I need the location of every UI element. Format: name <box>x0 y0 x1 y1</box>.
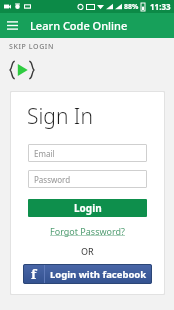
button[interactable]: Open navigation menu <box>0 13 25 38</box>
staticText: Sign In <box>27 102 93 131</box>
staticText: Login with facebook <box>50 268 147 281</box>
button[interactable]: Forgot Password? <box>50 225 125 237</box>
staticText: OR <box>81 245 94 257</box>
staticText: Password <box>34 174 71 185</box>
staticText: Email <box>34 148 55 159</box>
staticText: 11:33 <box>150 1 171 12</box>
button[interactable]: f <box>23 264 152 284</box>
button[interactable]: SKIP LOGIN <box>9 42 54 52</box>
button[interactable]: Email <box>28 144 147 162</box>
staticText: Login <box>74 201 102 215</box>
button[interactable]: Login <box>28 199 147 217</box>
staticText: f <box>31 265 37 283</box>
button[interactable]: Password <box>28 170 147 188</box>
staticText: 88% <box>124 2 139 12</box>
staticText: Learn Code Online <box>30 18 128 33</box>
